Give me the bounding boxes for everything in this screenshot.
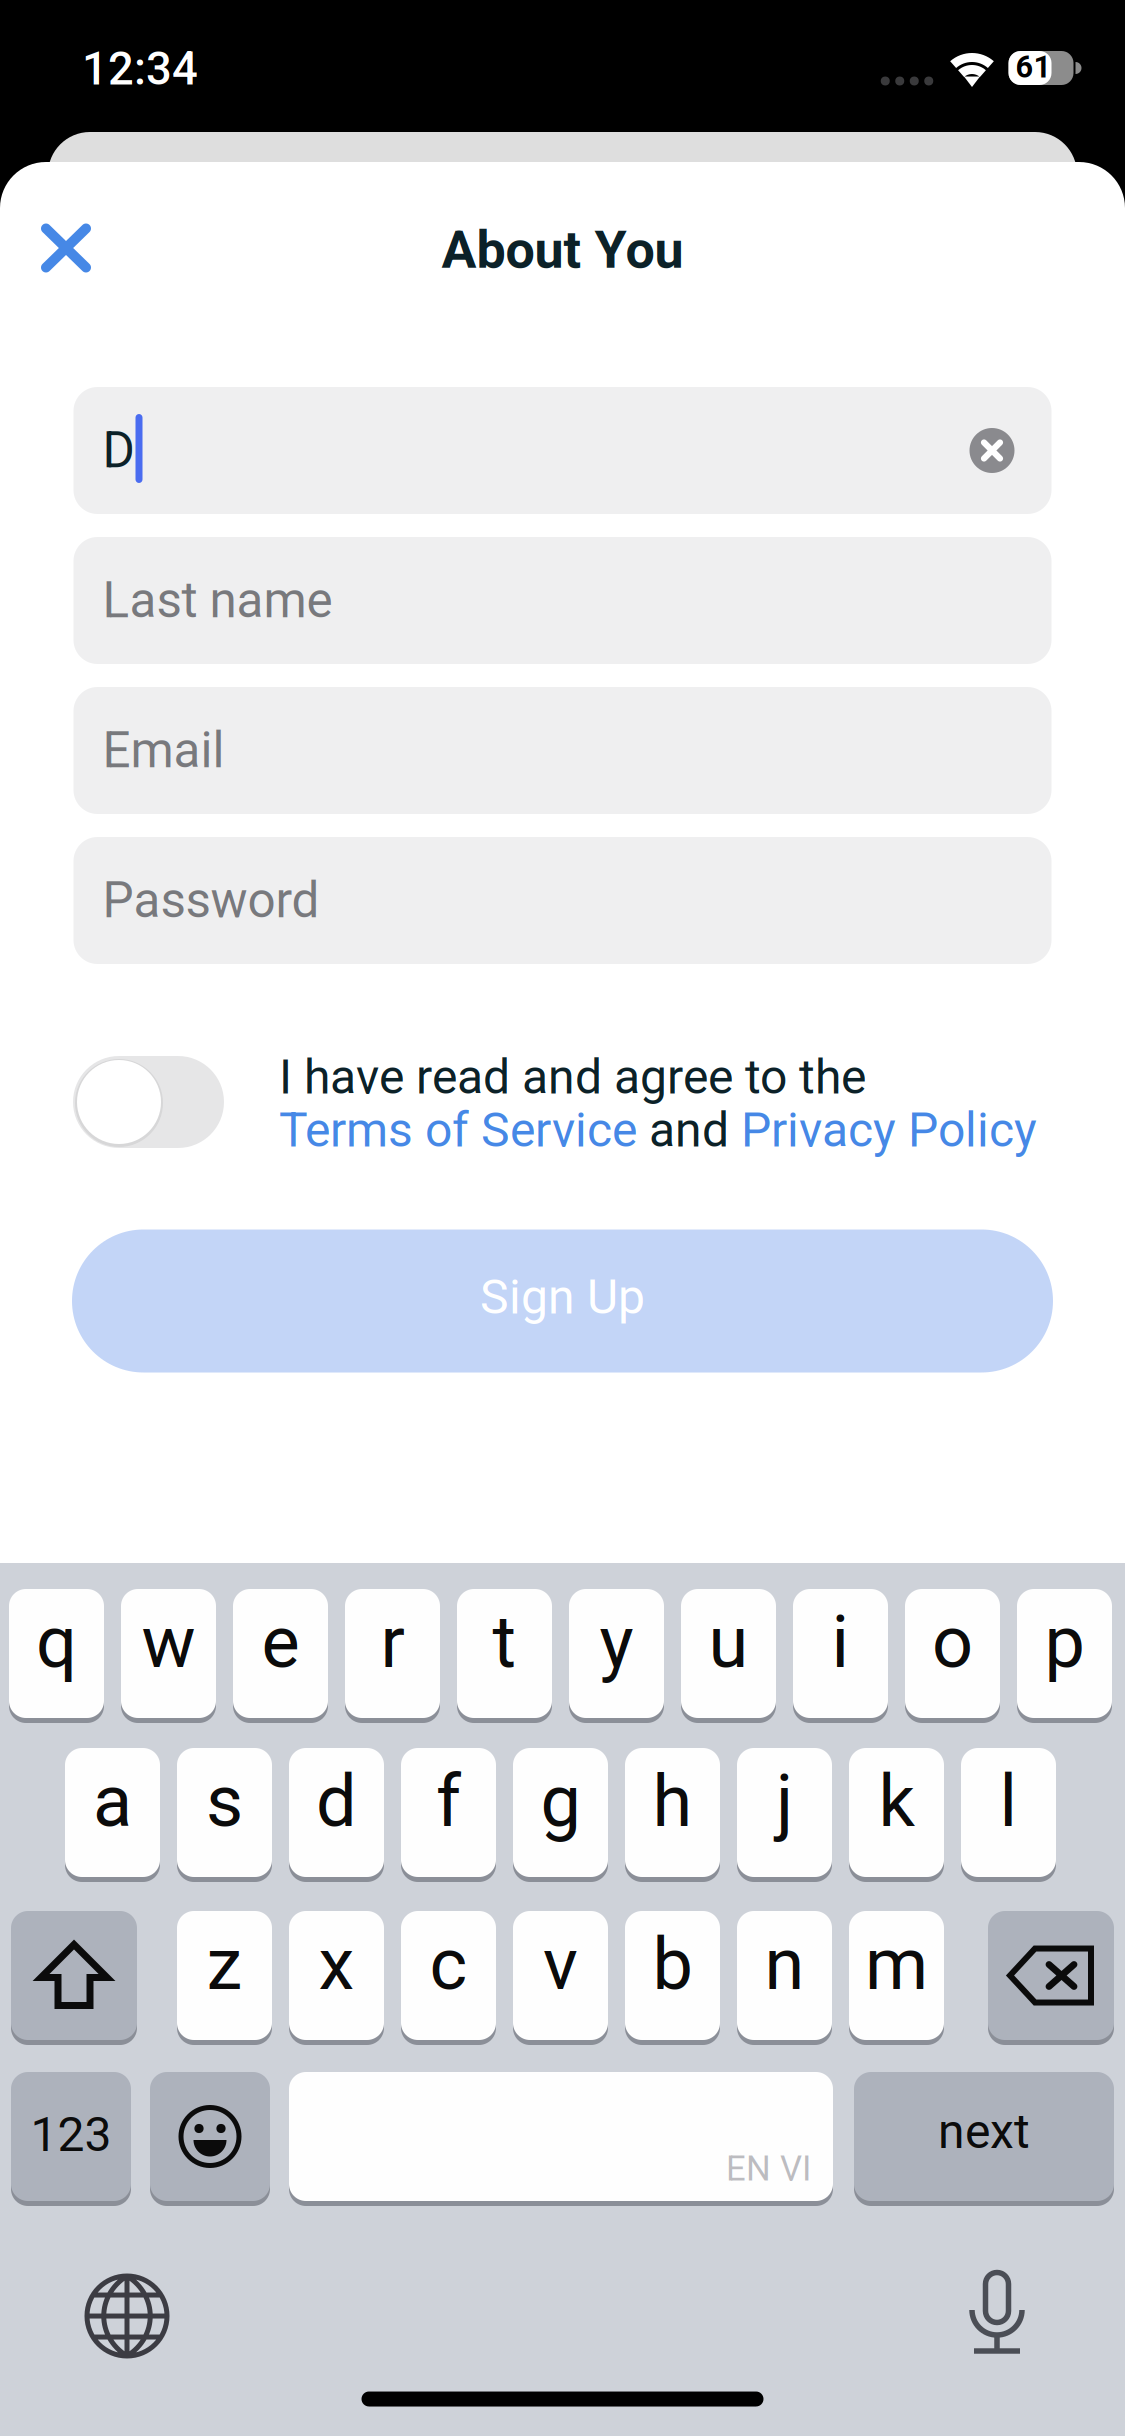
staticText: 61 bbox=[1015, 49, 1051, 85]
button[interactable]: Sign Up bbox=[72, 1229, 1053, 1372]
staticText: k bbox=[878, 1759, 914, 1844]
button[interactable]: y bbox=[569, 1589, 664, 1718]
button[interactable]: x bbox=[289, 1911, 384, 2040]
staticText: v bbox=[543, 1922, 578, 2007]
staticText: e bbox=[261, 1600, 299, 1685]
button[interactable]: r bbox=[345, 1589, 440, 1718]
staticText: l bbox=[999, 1759, 1017, 1844]
button[interactable]: z bbox=[177, 1911, 272, 2040]
staticText: EN VI bbox=[726, 2148, 811, 2189]
staticText: Password bbox=[102, 872, 319, 929]
button[interactable]: c bbox=[401, 1911, 496, 2040]
staticText: o bbox=[932, 1600, 973, 1685]
staticText: 123 bbox=[30, 2106, 111, 2163]
staticText: Email bbox=[102, 722, 224, 779]
button[interactable]: Shift bbox=[11, 1911, 137, 2040]
button[interactable]: Numbers bbox=[11, 2072, 131, 2201]
staticText: n bbox=[764, 1922, 804, 2007]
button[interactable]: q bbox=[9, 1589, 104, 1718]
button[interactable]: m bbox=[849, 1911, 944, 2040]
button[interactable]: k bbox=[849, 1748, 944, 1877]
staticText: I have read and agree to the bbox=[279, 1049, 866, 1105]
button[interactable]: i bbox=[793, 1589, 888, 1718]
button[interactable]: Agree to terms and conditions bbox=[73, 1056, 224, 1148]
staticText: c bbox=[429, 1922, 467, 2007]
staticText: d bbox=[316, 1759, 357, 1844]
button[interactable]: Delete bbox=[988, 1911, 1114, 2040]
staticText: m bbox=[865, 1922, 928, 2007]
button[interactable]: t bbox=[457, 1589, 552, 1718]
staticText: Last name bbox=[102, 572, 332, 629]
button[interactable]: Terms of Service bbox=[279, 1102, 637, 1158]
staticText: x bbox=[318, 1922, 354, 2007]
button[interactable]: j bbox=[737, 1748, 832, 1877]
button[interactable]: n bbox=[737, 1911, 832, 2040]
button[interactable]: Close bbox=[41, 223, 91, 272]
staticText: a bbox=[93, 1759, 132, 1844]
staticText: h bbox=[652, 1759, 692, 1844]
button[interactable]: Privacy Policy bbox=[741, 1102, 1037, 1158]
staticText: r bbox=[380, 1600, 404, 1685]
staticText: Privacy Policy bbox=[741, 1102, 1037, 1158]
staticText: and bbox=[637, 1102, 741, 1158]
button[interactable]: v bbox=[513, 1911, 608, 2040]
button[interactable]: Next keyboard bbox=[83, 2272, 171, 2360]
button[interactable]: o bbox=[905, 1589, 1000, 1718]
staticText: Terms of Service bbox=[279, 1102, 637, 1158]
button[interactable]: w bbox=[121, 1589, 216, 1718]
button[interactable]: b bbox=[625, 1911, 720, 2040]
button[interactable]: h bbox=[625, 1748, 720, 1877]
staticText: b bbox=[652, 1922, 692, 2007]
staticText: 12:34 bbox=[82, 42, 198, 95]
staticText: w bbox=[141, 1600, 195, 1685]
staticText: z bbox=[206, 1922, 242, 2007]
button[interactable]: Dictate bbox=[969, 2268, 1025, 2356]
staticText: u bbox=[708, 1600, 748, 1685]
staticText: Sign Up bbox=[480, 1269, 645, 1325]
button[interactable]: a bbox=[65, 1748, 160, 1877]
button[interactable]: next bbox=[854, 2072, 1114, 2201]
button[interactable]: u bbox=[681, 1589, 776, 1718]
staticText: About You bbox=[441, 219, 683, 280]
staticText: next bbox=[938, 2103, 1030, 2160]
staticText: g bbox=[540, 1759, 580, 1844]
button[interactable]: d bbox=[289, 1748, 384, 1877]
staticText: D bbox=[102, 422, 134, 479]
staticText: f bbox=[436, 1759, 461, 1844]
staticText: p bbox=[1044, 1600, 1084, 1685]
button[interactable]: s bbox=[177, 1748, 272, 1877]
staticText: i bbox=[831, 1600, 849, 1685]
button[interactable]: Space bbox=[289, 2072, 833, 2201]
button[interactable]: Emoji bbox=[150, 2072, 270, 2201]
staticText: s bbox=[206, 1759, 243, 1844]
staticText: t bbox=[492, 1600, 516, 1685]
button[interactable]: l bbox=[961, 1748, 1056, 1877]
button[interactable]: e bbox=[233, 1589, 328, 1718]
staticText: q bbox=[36, 1600, 77, 1685]
button[interactable]: f bbox=[401, 1748, 496, 1877]
button[interactable]: p bbox=[1017, 1589, 1112, 1718]
staticText: y bbox=[599, 1600, 633, 1685]
button[interactable]: g bbox=[513, 1748, 608, 1877]
staticText: j bbox=[776, 1759, 793, 1844]
